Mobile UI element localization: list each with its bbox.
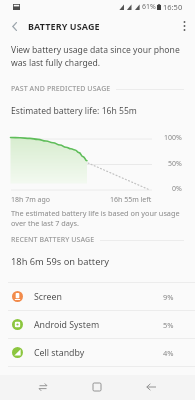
staticText: 0% — [172, 184, 182, 194]
staticText: 18h 7m ago — [11, 195, 50, 205]
button[interactable] — [0, 367, 195, 394]
button[interactable]: Recents — [32, 374, 54, 399]
staticText: 5% — [163, 320, 174, 330]
button[interactable]: More options — [173, 12, 195, 40]
staticText: Screen — [34, 291, 62, 303]
staticText: 100% — [164, 133, 182, 143]
button[interactable]: Screen — [0, 283, 195, 310]
button[interactable]: Android System — [0, 311, 195, 338]
button[interactable]: Cell standby — [0, 339, 195, 366]
staticText: 50% — [168, 159, 182, 169]
staticText: 18h 6m 59s on battery — [11, 255, 109, 268]
staticText: 16h 55m left — [110, 195, 152, 205]
staticText: 16:50 — [163, 2, 183, 12]
staticText: 9% — [163, 292, 174, 302]
button[interactable]: Navigate up — [0, 12, 28, 40]
staticText: The estimated battery life is based on y… — [11, 208, 180, 228]
button[interactable]: Back — [140, 374, 162, 399]
button[interactable]: Home — [86, 374, 108, 399]
staticText: 4% — [163, 348, 174, 358]
staticText: 61% — [142, 2, 156, 12]
staticText: RECENT BATTERY USAGE — [11, 235, 95, 245]
staticText: BATTERY USAGE — [28, 20, 100, 32]
staticText: Estimated battery life: 16h 55m — [11, 105, 137, 117]
staticText: Android System — [34, 319, 100, 331]
staticText: Cell standby — [34, 347, 85, 359]
staticText: PAST AND PREDICTED USAGE — [11, 84, 111, 94]
staticText: View battery usage data since your phone… — [11, 44, 180, 69]
